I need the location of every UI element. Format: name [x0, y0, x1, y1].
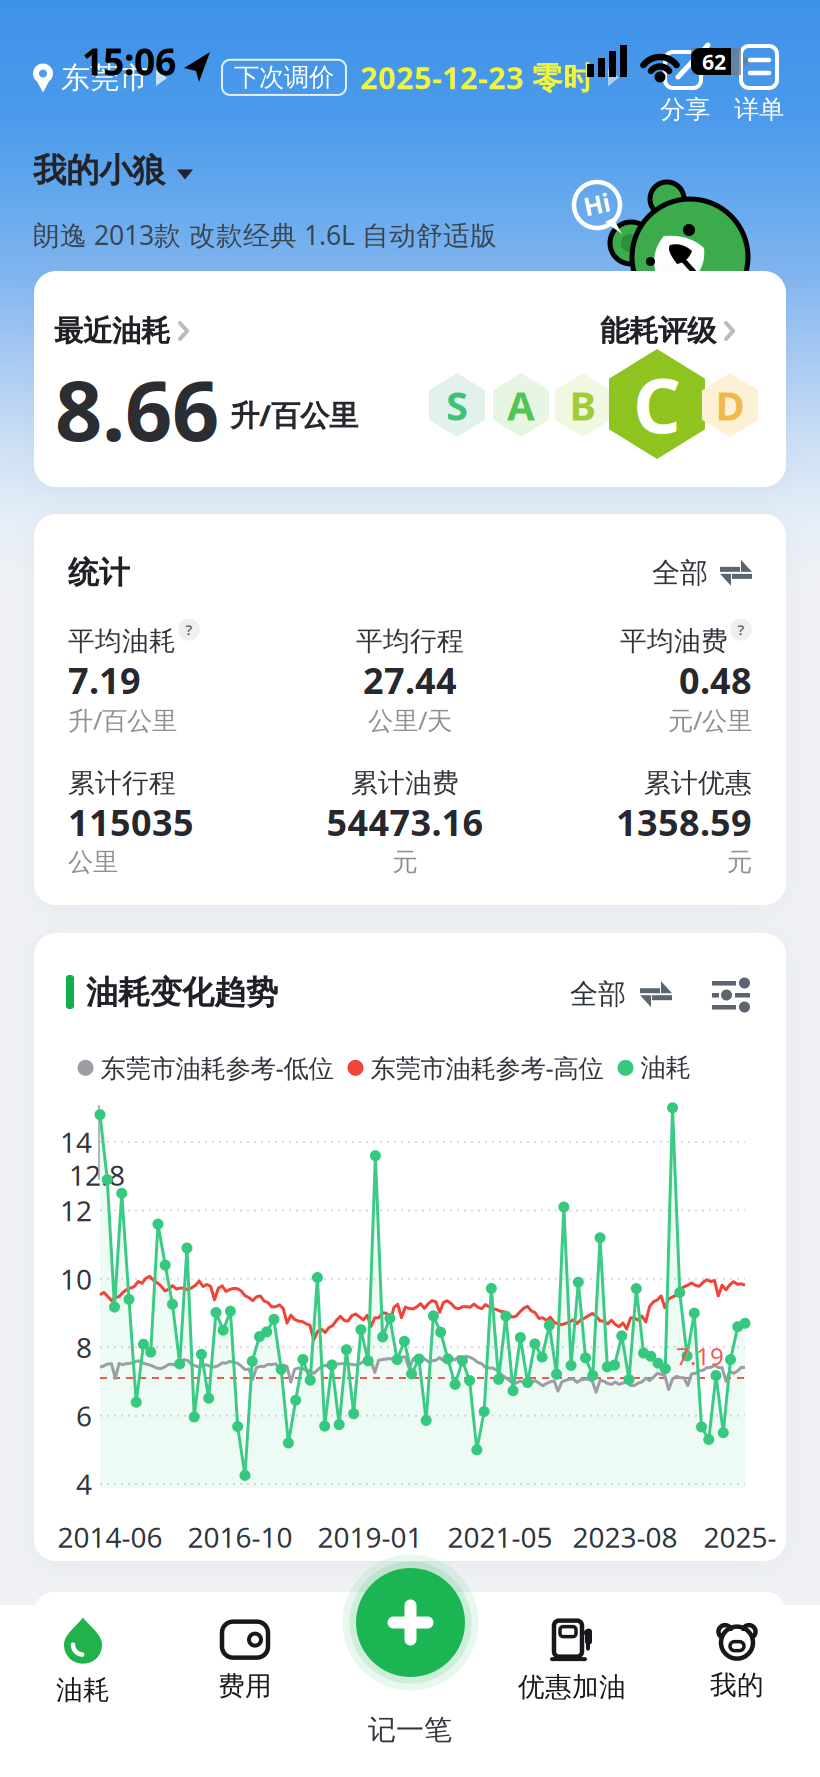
staticText: 公里: [68, 846, 118, 877]
staticText: 2023-08: [572, 1518, 677, 1556]
staticText: 朗逸 2013款 改款经典 1.6L 自动舒适版: [33, 217, 497, 252]
staticText: 详单: [734, 94, 784, 125]
staticText: 10: [60, 1260, 92, 1297]
staticText: 平均油耗: [68, 625, 176, 657]
button[interactable]: 下次调价: [222, 57, 620, 98]
staticText: 油耗: [56, 1674, 110, 1706]
staticText: 2025-12-23 零时: [360, 57, 594, 98]
staticText: 12: [60, 1192, 92, 1229]
staticText: B: [569, 378, 596, 431]
staticText: 元: [727, 846, 752, 877]
button[interactable]: 分享: [660, 46, 710, 125]
staticText: 14: [60, 1123, 92, 1161]
staticText: 我的: [710, 1669, 764, 1701]
button[interactable]: 全部: [652, 556, 752, 590]
staticText: 2019-01: [317, 1518, 422, 1556]
staticText: 全部: [652, 556, 708, 590]
staticText: 8.66: [55, 354, 219, 464]
button[interactable]: 优惠加油: [518, 1621, 626, 1703]
staticText: 2016-10: [187, 1518, 292, 1556]
staticText: 2021-05: [447, 1518, 552, 1556]
button[interactable]: 能耗评级: [600, 313, 737, 349]
staticText: 公里/天: [368, 703, 452, 737]
staticText: Hi: [583, 187, 610, 221]
button[interactable]: 我的小狼: [33, 150, 193, 191]
staticText: 东莞市油耗参考-高位: [370, 1051, 603, 1085]
staticText: 分享: [660, 94, 710, 125]
staticText: 62: [702, 47, 726, 76]
staticText: C: [633, 354, 681, 454]
button[interactable]: 最近油耗: [54, 313, 191, 349]
staticText: 27.44: [363, 656, 457, 704]
button[interactable]: 我的: [710, 1623, 764, 1701]
button[interactable]: 费用: [218, 1622, 272, 1702]
staticText: 54473.16: [326, 798, 483, 846]
staticText: 能耗评级: [600, 313, 716, 349]
staticText: A: [507, 378, 535, 431]
staticText: 平均油费: [620, 625, 728, 657]
staticText: 累计优惠: [644, 767, 752, 799]
staticText: S: [446, 378, 468, 431]
staticText: 记一笔: [368, 1713, 452, 1747]
button[interactable]: 记一笔: [356, 1568, 465, 1677]
staticText: 下次调价: [234, 62, 334, 93]
button[interactable]: 图表设置: [712, 977, 750, 1013]
staticText: 升/百公里: [230, 395, 358, 434]
staticText: ?: [185, 620, 192, 639]
staticText: 平均行程: [356, 625, 464, 657]
staticText: 12.8: [69, 1156, 125, 1194]
button[interactable]: 东莞市: [33, 60, 168, 96]
staticText: 优惠加油: [518, 1671, 626, 1703]
button[interactable]: 油耗: [56, 1618, 110, 1706]
staticText: 115035: [68, 798, 194, 846]
staticText: D: [715, 378, 744, 431]
staticText: 2014-06: [57, 1518, 162, 1556]
staticText: 6: [76, 1397, 92, 1434]
staticText: 统计: [68, 554, 130, 592]
button[interactable]: 全部: [570, 977, 672, 1011]
staticText: 7.19: [68, 656, 141, 704]
staticText: 8: [76, 1329, 92, 1366]
staticText: 元: [392, 846, 417, 877]
staticText: ?: [737, 620, 744, 639]
staticText: 1358.59: [616, 798, 752, 846]
staticText: 4: [76, 1465, 92, 1503]
staticText: 油耗: [640, 1052, 690, 1083]
staticText: 我的小狼: [33, 150, 165, 191]
staticText: 0.48: [679, 656, 752, 704]
staticText: 2025-: [703, 1518, 776, 1556]
staticText: 15:06: [82, 36, 176, 86]
staticText: 累计油费: [351, 767, 459, 799]
staticText: 7.19: [676, 1340, 724, 1372]
staticText: 东莞市: [61, 60, 148, 96]
staticText: 东莞市油耗参考-低位: [100, 1051, 333, 1085]
staticText: 累计行程: [68, 767, 176, 799]
staticText: 油耗变化趋势: [86, 973, 278, 1012]
button[interactable]: 详单: [734, 46, 784, 125]
staticText: 元/公里: [668, 703, 752, 737]
staticText: 最近油耗: [54, 313, 170, 349]
staticText: 升/百公里: [68, 703, 177, 737]
staticText: 费用: [218, 1670, 272, 1702]
staticText: 全部: [570, 977, 626, 1011]
